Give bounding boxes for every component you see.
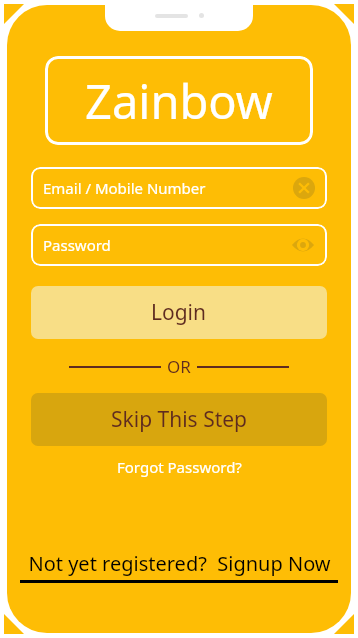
button[interactable]: Skip This Step — [31, 393, 327, 446]
staticText: Login — [151, 298, 207, 327]
button[interactable]: Email / Mobile Number — [31, 167, 327, 209]
staticText: Email / Mobile Number — [43, 178, 293, 198]
button[interactable]: Show password — [291, 233, 315, 257]
staticText: Password — [43, 235, 291, 255]
button[interactable]: Forgot Password? — [109, 454, 250, 480]
staticText: Not yet registered? Signup Now — [28, 550, 331, 577]
staticText: Zainbow — [85, 69, 273, 133]
button[interactable]: Clear text — [293, 177, 315, 199]
button[interactable]: Password — [31, 224, 327, 266]
button[interactable]: Not yet registered? Signup Now — [20, 550, 338, 583]
staticText: OR — [167, 355, 191, 378]
staticText: Skip This Step — [111, 405, 247, 434]
staticText: Forgot Password? — [117, 457, 242, 477]
button[interactable]: Login — [31, 286, 327, 339]
